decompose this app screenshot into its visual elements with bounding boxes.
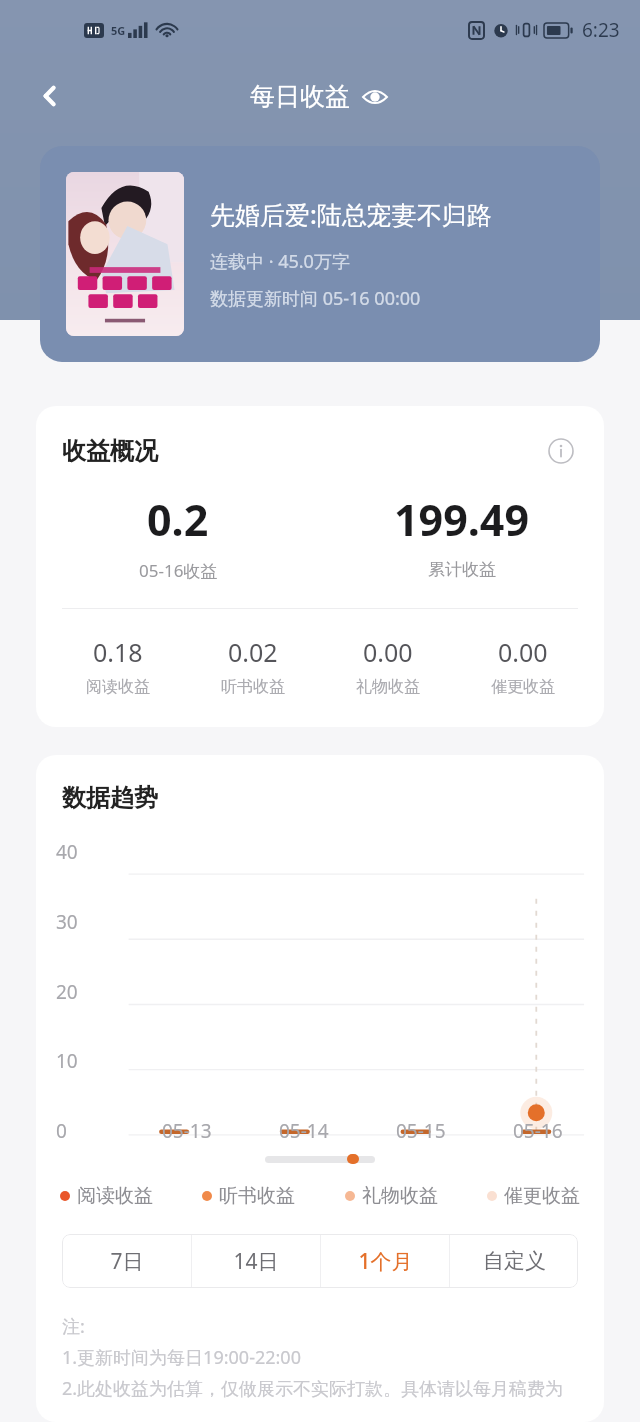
staticText: 累计收益 — [428, 559, 496, 580]
staticText: 0 — [56, 1118, 67, 1144]
button[interactable]: Toggle visibility — [360, 82, 390, 112]
staticText: 注: — [62, 1314, 85, 1339]
button[interactable]: Info — [544, 434, 578, 468]
staticText: 7日 — [110, 1247, 144, 1276]
staticText: 阅读收益 — [86, 677, 150, 697]
button[interactable]: 先婚后爱:陆总宠妻不归路 — [40, 146, 600, 362]
button[interactable]: Back — [26, 72, 74, 120]
staticText: 连载中 · 45.0万字 — [210, 249, 350, 274]
staticText: 6:23 — [582, 17, 620, 43]
staticText: 20 — [56, 979, 78, 1005]
staticText: 10 — [56, 1048, 78, 1074]
staticText: 14日 — [233, 1247, 279, 1276]
staticText: 0.00 — [363, 635, 413, 669]
staticText: 1个月 — [358, 1247, 413, 1276]
staticText: 每日收益 — [250, 81, 350, 112]
staticText: 5G — [111, 23, 126, 38]
staticText: 收益概况 — [62, 436, 158, 466]
button[interactable]: 14日 — [192, 1234, 320, 1288]
staticText: 阅读收益 — [77, 1184, 153, 1208]
staticText: 40 — [56, 839, 78, 865]
button[interactable]: 自定义 — [450, 1234, 578, 1288]
button[interactable]: 7日 — [62, 1234, 191, 1288]
staticText: 0.02 — [228, 635, 278, 669]
staticText: 30 — [56, 909, 78, 935]
staticText: 1.更新时间为每日19:00-22:00 — [62, 1345, 301, 1370]
staticText: 0.2 — [147, 490, 209, 549]
staticText: 催更收益 — [504, 1184, 580, 1208]
staticText: 199.49 — [394, 490, 530, 549]
button[interactable]: 1个月 — [321, 1234, 449, 1288]
staticText: 05-16收益 — [139, 559, 218, 582]
staticText: 自定义 — [483, 1248, 546, 1274]
staticText: 05-13 — [162, 1118, 212, 1144]
staticText: 礼物收益 — [356, 677, 420, 697]
staticText: 礼物收益 — [362, 1184, 438, 1208]
staticText: 数据趋势 — [62, 783, 158, 813]
staticText: 催更收益 — [491, 677, 555, 697]
staticText: 05-16 — [513, 1118, 563, 1144]
staticText: 听书收益 — [219, 1184, 295, 1208]
staticText: 0.00 — [498, 635, 548, 669]
staticText: 听书收益 — [221, 677, 285, 697]
staticText: 05-14 — [279, 1118, 329, 1144]
staticText: 0.18 — [93, 635, 143, 669]
staticText: 2.此处收益为估算，仅做展示不实际打款。具体请以每月稿费为 — [62, 1376, 564, 1401]
staticText: 先婚后爱:陆总宠妻不归路 — [210, 197, 492, 231]
staticText: 05-15 — [396, 1118, 446, 1144]
staticText: 数据更新时间 05-16 00:00 — [210, 286, 421, 311]
